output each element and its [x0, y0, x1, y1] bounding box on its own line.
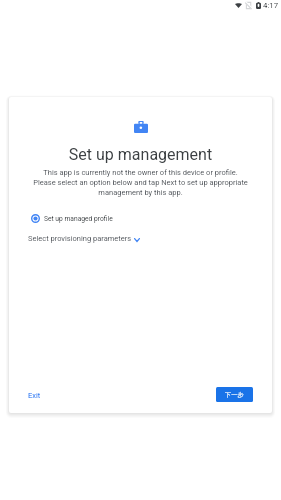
button[interactable]: 下一步	[216, 387, 253, 402]
button[interactable]: Set up managed profile	[9, 207, 272, 229]
button[interactable]: Select provisioning parameters	[9, 231, 140, 245]
staticText: This app is currently not the owner of t…	[33, 168, 248, 197]
button[interactable]: Exit	[20, 385, 49, 406]
staticText: Set up managed profile	[44, 215, 113, 223]
staticText: 下一步	[225, 391, 244, 399]
staticText: Select provisioning parameters	[28, 234, 132, 243]
staticText: Set up management	[9, 145, 272, 164]
staticText: Exit	[28, 391, 41, 400]
staticText: 4:17	[263, 1, 279, 10]
